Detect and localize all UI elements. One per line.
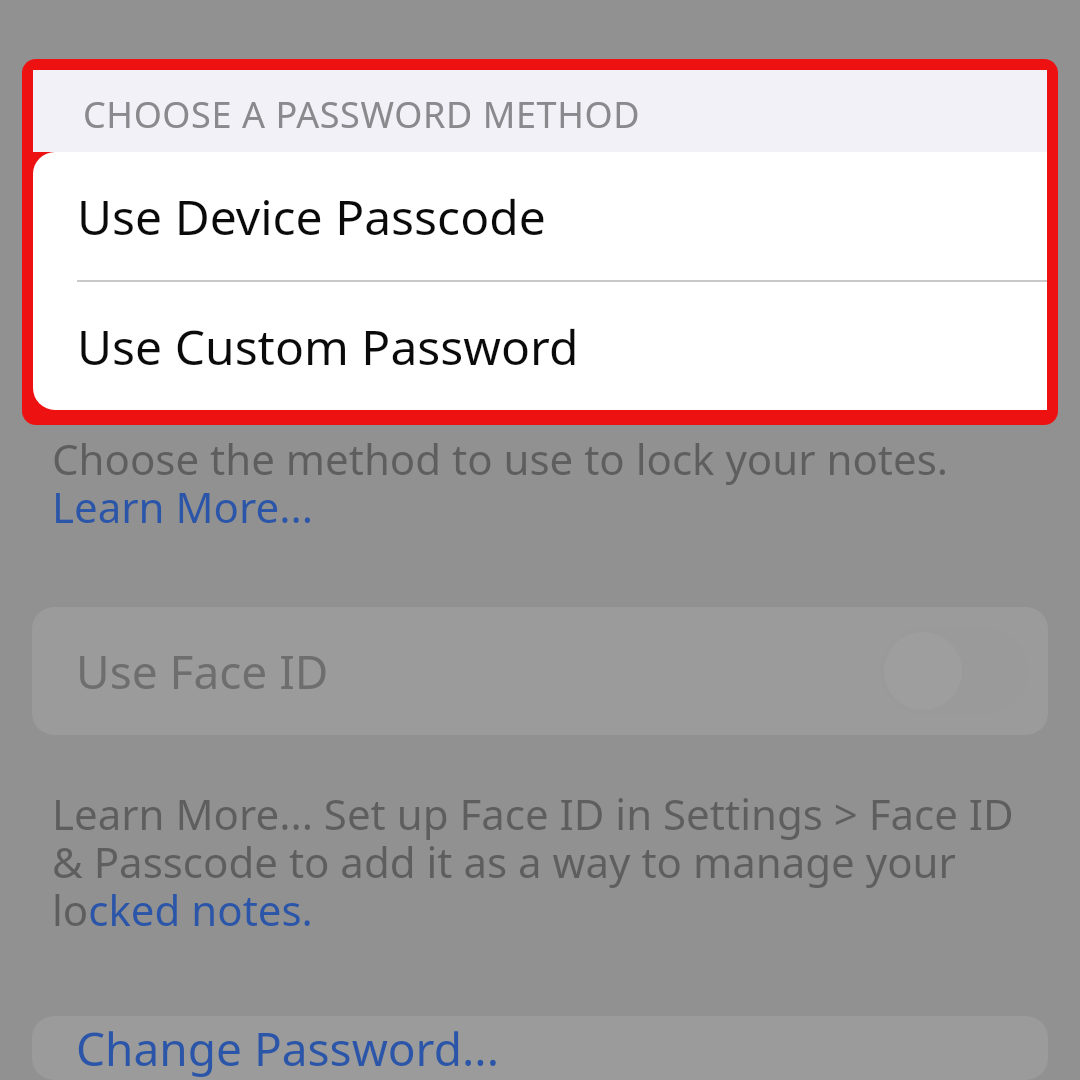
staticText: Use Face ID xyxy=(76,640,329,703)
staticText: Use Device Passcode xyxy=(77,184,546,249)
staticText: CHOOSE A PASSWORD METHOD xyxy=(83,90,641,139)
button[interactable]: Use Device Passcode xyxy=(33,152,1047,280)
button[interactable]: Change Password... xyxy=(32,1016,1048,1080)
button[interactable]: Use Face ID xyxy=(32,607,1048,735)
staticText: Learn More... Set up Face ID in Settings… xyxy=(52,785,1024,938)
staticText: Choose the method to use to lock your no… xyxy=(52,430,1024,535)
staticText: Change Password... xyxy=(76,1017,499,1080)
button[interactable]: Use Custom Password xyxy=(33,282,1047,410)
staticText: Use Custom Password xyxy=(77,314,579,379)
